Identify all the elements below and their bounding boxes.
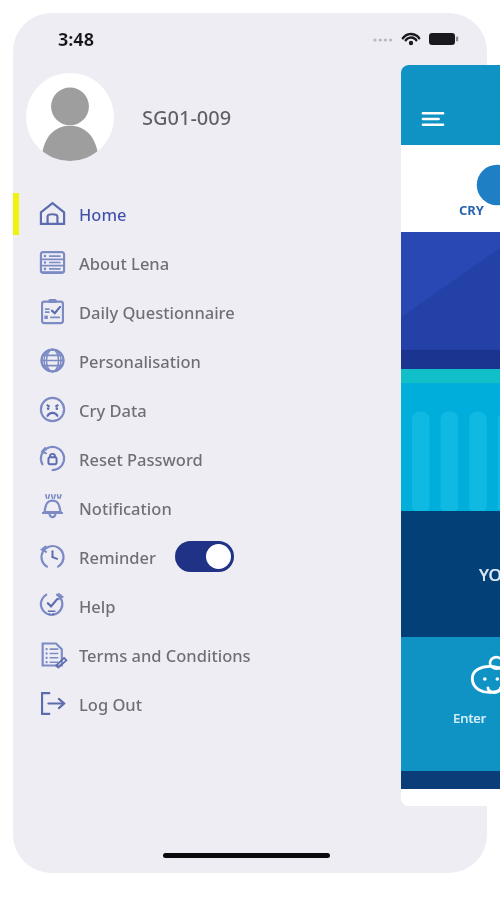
button[interactable]: Terms and Conditions [13,630,487,679]
staticText: Help [79,595,116,617]
staticText: Reset Password [79,448,203,470]
staticText: About Lena [79,252,170,274]
button[interactable]: Cry Data [13,385,487,434]
button[interactable]: Reminder [13,532,487,581]
staticText: YO [479,563,500,586]
staticText: Log Out [79,693,143,715]
staticText: 3:48 [58,27,94,52]
button[interactable]: Home [13,189,487,238]
staticText: Personalisation [79,350,201,372]
button[interactable]: Help [13,581,487,630]
button[interactable]: Reminder toggle, on [175,541,234,572]
staticText: SG01-009 [142,104,232,131]
staticText: Daily Questionnaire [79,301,235,323]
button[interactable]: Personalisation [13,336,487,385]
staticText: CRY [459,201,485,219]
button[interactable]: Reset Password [13,434,487,483]
staticText: Terms and Conditions [79,644,251,666]
button[interactable]: Log Out [13,679,487,728]
staticText: Home [79,203,127,225]
button[interactable]: Daily Questionnaire [13,287,487,336]
button[interactable]: Notification [13,483,487,532]
staticText: Notification [79,497,172,519]
staticText: Enter [453,709,487,727]
button[interactable]: Main screen preview [401,65,500,806]
staticText: Cry Data [79,399,147,421]
staticText: Reminder [79,546,157,568]
button[interactable]: About Lena [13,238,487,287]
button[interactable]: SG01-009 [13,67,487,167]
